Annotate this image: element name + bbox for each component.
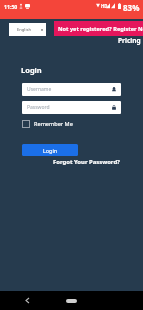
button[interactable]: Back — [21, 294, 33, 306]
button[interactable]: Forgot Your Password? — [53, 158, 120, 166]
button[interactable]: Not yet registered? Register Now — [54, 21, 143, 36]
button[interactable]: Pricing — [118, 36, 141, 45]
button[interactable]: Login — [22, 144, 78, 156]
staticText: Not yet registered? Register Now — [58, 25, 143, 33]
staticText: Login — [21, 65, 42, 75]
staticText: Remember Me — [34, 120, 73, 128]
staticText: Login — [43, 147, 58, 154]
button[interactable]: Username — [22, 83, 121, 96]
staticText: 11:50 — [4, 3, 18, 10]
staticText: Username — [27, 86, 52, 93]
button[interactable]: Home — [66, 299, 77, 303]
staticText: 83% — [123, 2, 140, 13]
button[interactable]: English — [9, 23, 46, 36]
staticText: English — [17, 27, 31, 33]
button[interactable]: Remember Me — [22, 118, 73, 129]
button[interactable]: Password — [22, 101, 121, 114]
staticText: HD — [101, 3, 108, 9]
staticText: Password — [27, 104, 50, 111]
